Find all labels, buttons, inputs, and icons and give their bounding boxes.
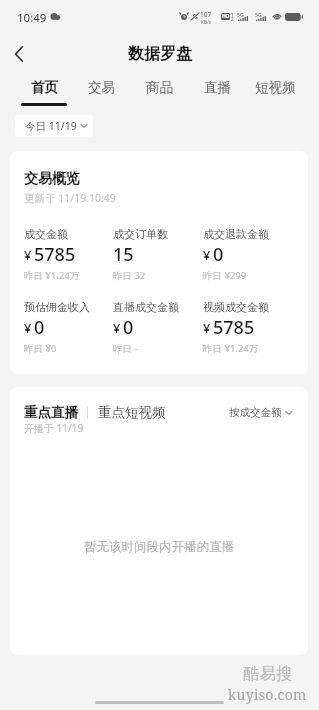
staticText: 重点直播 xyxy=(24,404,78,421)
staticText: 更新于 11/19 10:49 xyxy=(24,191,116,205)
button[interactable]: 商品 xyxy=(130,71,188,107)
staticText: 107 xyxy=(200,10,212,19)
button[interactable]: Back xyxy=(0,35,38,73)
staticText: 酷易搜 xyxy=(243,664,293,684)
staticText: kuyiso.com xyxy=(228,685,307,704)
staticText: 视频成交金额 xyxy=(203,300,269,314)
staticText: 10:49 xyxy=(17,10,47,26)
staticText: 暂无该时间段内开播的直播 xyxy=(84,539,234,555)
staticText: 开播于 11/19 xyxy=(24,421,84,435)
staticText: ¥ xyxy=(24,320,32,337)
staticText: 15 xyxy=(113,242,134,267)
button[interactable]: 今日 11/19 xyxy=(15,115,93,137)
staticText: 昨日 ¥0 xyxy=(24,342,57,355)
button[interactable]: 重点直播 xyxy=(24,401,78,424)
button[interactable]: 短视频 xyxy=(246,71,304,107)
staticText: 5G xyxy=(237,11,244,18)
staticText: 商品 xyxy=(146,79,173,96)
staticText: 今日 11/19 xyxy=(25,119,77,133)
button[interactable]: 交易 xyxy=(72,71,130,107)
staticText: 重点短视频 xyxy=(98,404,166,421)
button[interactable]: 按成交金额 xyxy=(229,402,293,423)
button[interactable]: 直播 xyxy=(188,71,246,107)
staticText: 按成交金额 xyxy=(229,406,282,419)
staticText: 昨日 ¥299 xyxy=(203,269,247,282)
staticText: 直播成交金额 xyxy=(113,300,179,314)
staticText: 数据罗盘 xyxy=(128,44,192,64)
staticText: ¥ xyxy=(203,320,211,337)
staticText: ¥ xyxy=(203,247,211,264)
staticText: 首页 xyxy=(31,79,58,96)
staticText: 0 xyxy=(34,315,45,340)
staticText: 交易概览 xyxy=(24,170,80,188)
staticText: 成交订单数 xyxy=(113,227,168,241)
staticText: KB/s xyxy=(201,19,212,26)
staticText: 5785 xyxy=(34,242,76,267)
staticText: 昨日 ¥1.24万 xyxy=(203,342,259,355)
staticText: 交易 xyxy=(88,79,115,96)
staticText: HD xyxy=(222,13,230,20)
button[interactable]: 首页 xyxy=(15,71,72,107)
staticText: 1 xyxy=(231,12,234,18)
staticText: 预估佣金收入 xyxy=(24,300,90,314)
staticText: 5G xyxy=(255,11,262,18)
staticText: 0 xyxy=(213,242,224,267)
staticText: 短视频 xyxy=(255,79,296,96)
staticText: 成交退款金额 xyxy=(203,227,269,241)
staticText: 昨日 ¥1.24万 xyxy=(24,269,80,282)
staticText: 0 xyxy=(123,315,134,340)
staticText: 昨日 32 xyxy=(113,269,146,282)
staticText: 昨日 - xyxy=(113,342,138,355)
staticText: ¥ xyxy=(24,247,32,264)
staticText: 直播 xyxy=(204,79,231,96)
staticText: 2 xyxy=(231,16,234,22)
staticText: ¥ xyxy=(113,320,121,337)
staticText: 5785 xyxy=(213,315,255,340)
button[interactable]: 重点短视频 xyxy=(98,401,166,424)
staticText: 成交金额 xyxy=(24,227,68,241)
